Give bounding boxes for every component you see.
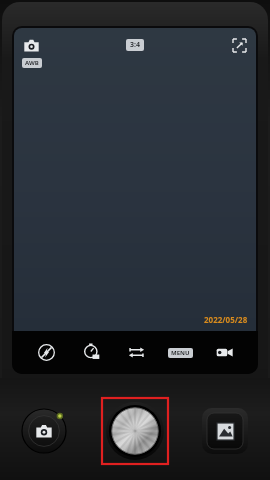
staticText: MENU [171, 349, 190, 357]
button[interactable]: Record video [202, 331, 246, 374]
button[interactable]: AWB [22, 58, 42, 68]
button[interactable]: Flash off [24, 331, 69, 374]
staticText: AWB [25, 59, 39, 67]
button[interactable]: MENU [168, 348, 193, 358]
button[interactable]: Shutter [102, 398, 168, 464]
button[interactable]: Self timer off [69, 331, 114, 374]
button[interactable]: 3:4 [126, 39, 144, 51]
staticText: 2022/05/28 [204, 314, 248, 325]
staticText: 3:4 [130, 40, 140, 50]
button[interactable]: Camera mode [22, 36, 40, 54]
button[interactable]: Expand view [230, 36, 248, 54]
button[interactable]: Drive mode [114, 331, 158, 374]
button[interactable]: Gallery [202, 408, 248, 454]
button[interactable]: Camera mode [22, 409, 66, 453]
